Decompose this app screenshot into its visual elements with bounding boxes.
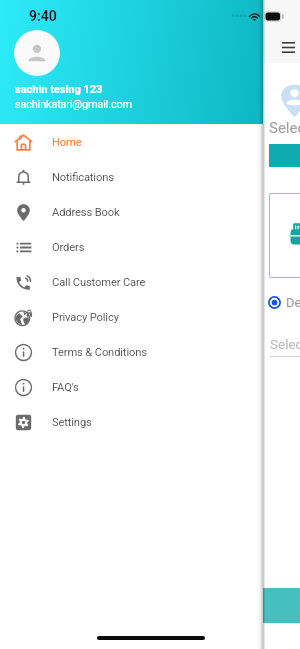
button[interactable]: Settings [0, 405, 263, 440]
staticText: sachin tesing 123 [15, 83, 103, 96]
staticText: FAQ's [52, 381, 79, 394]
staticText: Terms & Conditions [52, 346, 147, 359]
staticText: Call Customer Care [52, 276, 146, 289]
staticText: Select Location [269, 119, 300, 137]
button[interactable]: Delivery [265, 293, 300, 311]
staticText: Delivery [286, 295, 300, 310]
staticText: Home [52, 136, 82, 149]
button[interactable]: Notifications [0, 160, 263, 195]
button[interactable]: Call Customer Care [0, 265, 263, 300]
staticText: sachinkatari@gmail.com [15, 98, 132, 111]
button[interactable]: Orders [0, 230, 263, 265]
button[interactable]: Book now [263, 588, 300, 623]
staticText: Address Book [52, 206, 120, 219]
button[interactable]: Privacy Policy [0, 300, 263, 335]
button[interactable]: Open navigation menu [278, 37, 298, 57]
button[interactable]: FAQ's [0, 370, 263, 405]
staticText: Orders [52, 241, 85, 254]
button[interactable]: Gas cylinder product [269, 193, 300, 278]
button[interactable]: Home [0, 125, 263, 160]
staticText: Settings [52, 416, 92, 429]
staticText: 9:40 [29, 8, 57, 24]
staticText: Privacy Policy [52, 311, 119, 324]
button[interactable]: Select [270, 332, 300, 357]
staticText: Notifications [52, 171, 114, 184]
button[interactable]: Profile picture [14, 30, 60, 76]
button[interactable]: Terms & Conditions [0, 335, 263, 370]
button[interactable]: Address Book [0, 195, 263, 230]
staticText: Select [270, 336, 300, 352]
